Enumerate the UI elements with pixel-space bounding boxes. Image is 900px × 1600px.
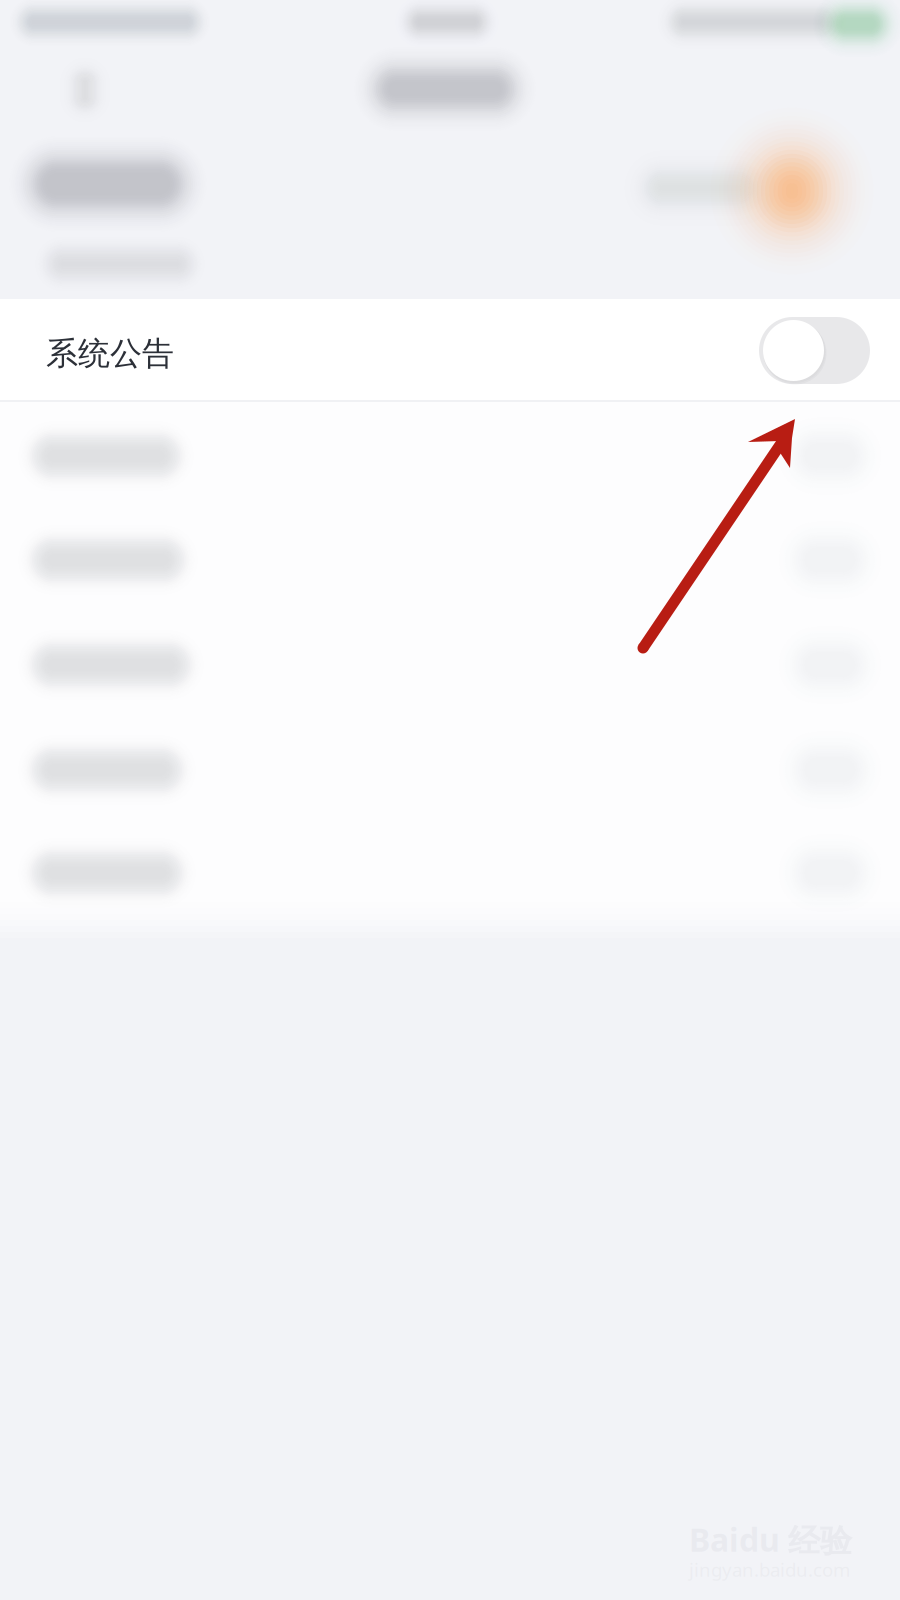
staticText: 系统公告	[46, 334, 174, 373]
staticText: Baidu 经验	[689, 1518, 852, 1561]
button[interactable]: 系统公告	[0, 299, 900, 402]
